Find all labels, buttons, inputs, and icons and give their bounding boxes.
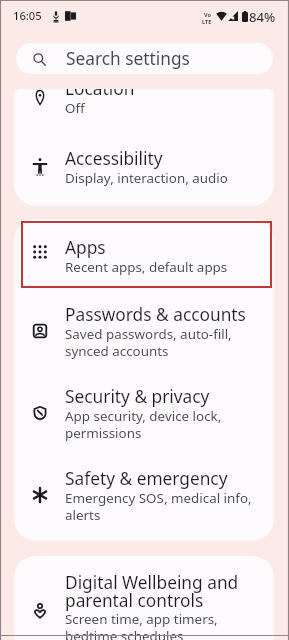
staticText: Accessibility <box>65 147 163 171</box>
staticText: 16:05 <box>13 8 42 23</box>
button[interactable]: Digital Wellbeing and parental controls <box>14 565 274 640</box>
staticText: Location <box>65 89 135 101</box>
staticText: Apps <box>65 236 106 260</box>
staticText: Safety & emergency <box>65 467 228 491</box>
button[interactable]: Accessibility <box>14 141 274 195</box>
button[interactable]: Location <box>14 89 274 125</box>
staticText: Digital Wellbeing and parental controls <box>65 571 239 612</box>
staticText: Search settings <box>66 47 190 71</box>
staticText: Display, interaction, audio <box>65 169 228 187</box>
staticText: Screen time, app timers, bedtime schedul… <box>65 610 218 640</box>
staticText: LTE <box>202 18 212 25</box>
button[interactable]: Security & privacy <box>14 379 274 450</box>
staticText: 84% <box>249 8 276 26</box>
staticText: Passwords & accounts <box>65 303 246 327</box>
button[interactable]: Passwords & accounts <box>14 297 274 368</box>
button[interactable]: Apps <box>14 230 274 284</box>
staticText: Security & privacy <box>65 385 210 409</box>
staticText: Saved passwords, auto-fill, synced accou… <box>65 325 232 360</box>
staticText: App security, device lock, permissions <box>65 407 222 442</box>
button[interactable]: Search settings <box>16 43 273 74</box>
staticText: Recent apps, default apps <box>65 258 228 276</box>
button[interactable]: Safety & emergency <box>14 461 274 532</box>
staticText: Emergency SOS, medical info, alerts <box>65 489 252 524</box>
staticText: Off <box>65 99 85 117</box>
staticText: Vo <box>204 11 211 18</box>
